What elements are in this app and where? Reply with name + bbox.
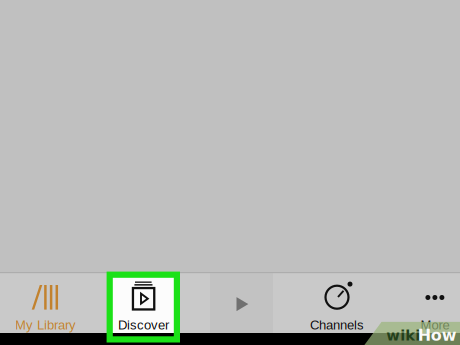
button[interactable]: Channels xyxy=(0,0,460,345)
staticText: More xyxy=(420,318,449,332)
staticText: Discover xyxy=(118,318,169,332)
button[interactable]: Play xyxy=(0,0,460,345)
button[interactable]: More xyxy=(0,0,460,345)
staticText: How xyxy=(418,326,457,344)
button[interactable]: Discover xyxy=(0,0,460,345)
staticText: wiki xyxy=(386,327,420,344)
staticText: Channels xyxy=(310,318,364,332)
staticText: My Library xyxy=(15,318,76,332)
button[interactable]: My Library xyxy=(0,0,460,345)
